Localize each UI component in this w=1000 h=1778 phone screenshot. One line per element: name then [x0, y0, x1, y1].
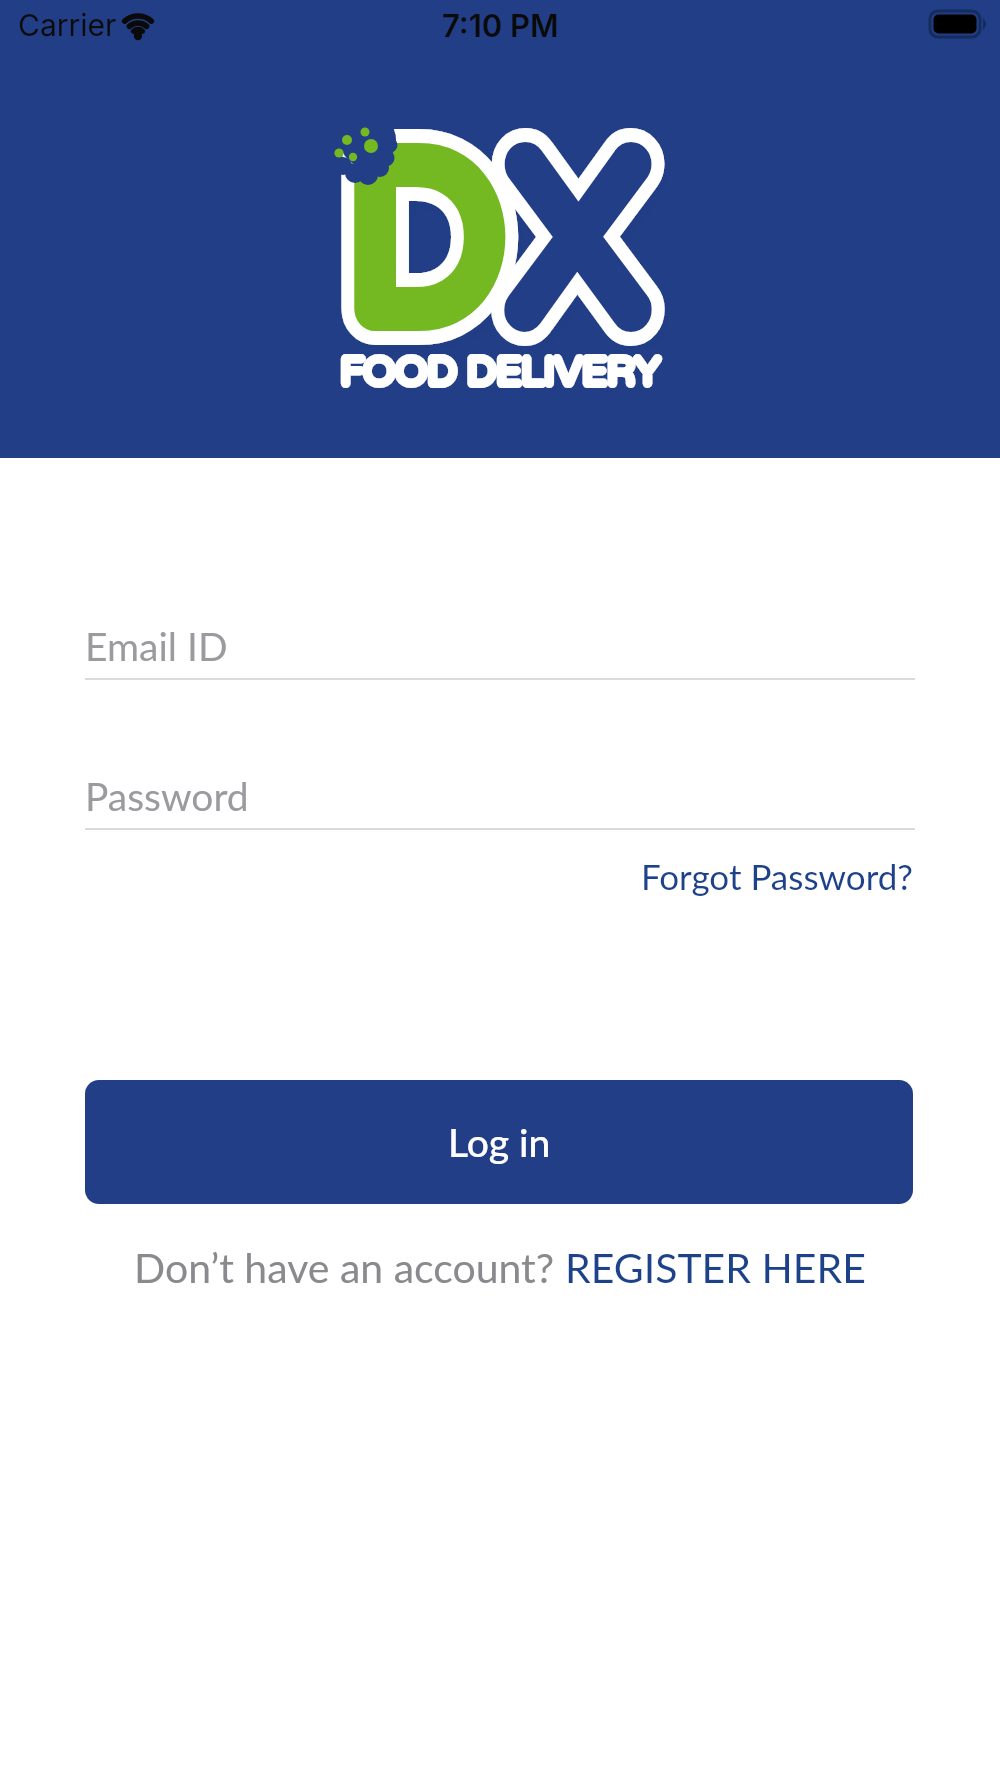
- button[interactable]: Password: [85, 762, 915, 830]
- button[interactable]: Email ID: [85, 612, 915, 680]
- staticText: Carrier: [18, 7, 117, 43]
- staticText: Password: [85, 773, 249, 820]
- staticText: DX: [344, 104, 656, 386]
- staticText: DX: [344, 104, 656, 386]
- button[interactable]: Log in: [85, 1080, 913, 1204]
- staticText: Don’t have an account?: [134, 1243, 565, 1292]
- staticText: Forgot Password?: [641, 855, 913, 897]
- staticText: Email ID: [85, 623, 228, 670]
- staticText: DX: [344, 104, 656, 386]
- staticText: FOOD DELIVERY: [340, 348, 660, 396]
- staticText: REGISTER HERE: [565, 1243, 866, 1292]
- button[interactable]: Forgot Password?: [641, 855, 913, 897]
- staticText: 7:10 PM: [442, 7, 559, 45]
- staticText: Log in: [448, 1119, 551, 1166]
- button[interactable]: Don’t have an account?: [134, 1243, 866, 1292]
- staticText: FOOD DELIVERY: [340, 348, 660, 396]
